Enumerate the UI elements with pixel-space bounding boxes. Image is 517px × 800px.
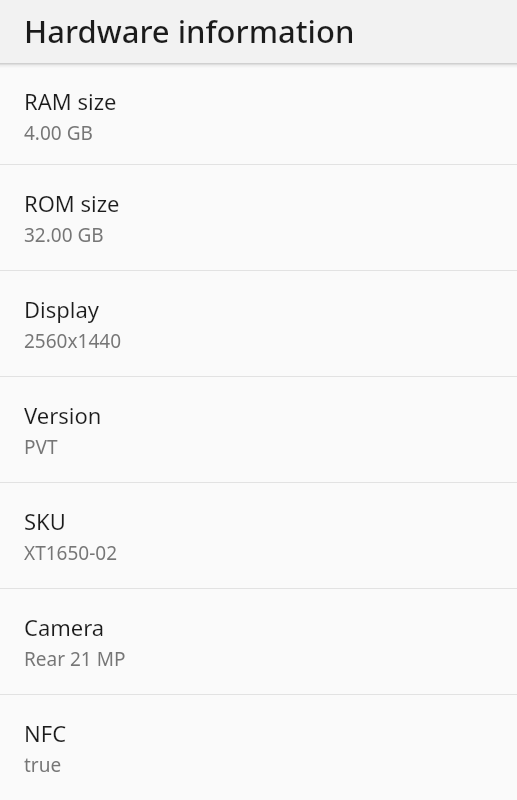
- staticText: true: [24, 752, 62, 778]
- button[interactable]: Display: [0, 271, 517, 376]
- staticText: Rear 21 MP: [24, 646, 126, 672]
- staticText: ROM size: [24, 188, 120, 218]
- staticText: Display: [24, 294, 100, 324]
- button[interactable]: Version: [0, 377, 517, 482]
- button[interactable]: ROM size: [0, 165, 517, 270]
- button[interactable]: RAM size: [0, 68, 517, 164]
- staticText: PVT: [24, 434, 58, 460]
- staticText: Hardware information: [24, 10, 355, 52]
- staticText: NFC: [24, 718, 67, 748]
- staticText: Version: [24, 400, 102, 430]
- button[interactable]: SKU: [0, 483, 517, 588]
- button[interactable]: Camera: [0, 589, 517, 694]
- staticText: 32.00 GB: [24, 222, 104, 248]
- staticText: SKU: [24, 506, 66, 536]
- staticText: 4.00 GB: [24, 120, 93, 146]
- staticText: XT1650-02: [24, 540, 118, 566]
- staticText: Camera: [24, 612, 105, 642]
- staticText: RAM size: [24, 86, 117, 116]
- button[interactable]: NFC: [0, 695, 517, 800]
- staticText: 2560x1440: [24, 328, 121, 354]
